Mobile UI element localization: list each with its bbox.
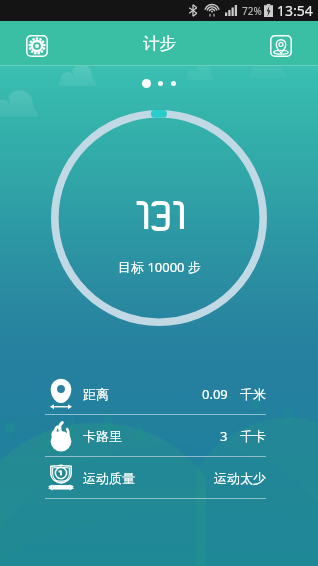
staticText: 0.09 (202, 385, 228, 403)
button[interactable]: Location profile (270, 35, 292, 57)
staticText: 计步 (143, 33, 176, 54)
staticText: 千卡 (240, 428, 266, 444)
staticText: 3 (220, 427, 228, 445)
button[interactable]: 卡路里 (45, 415, 266, 456)
button[interactable]: 距离 (45, 373, 266, 414)
staticText: 千米 (240, 386, 266, 402)
staticText: 72% (242, 4, 262, 18)
button[interactable]: Settings (26, 35, 48, 57)
staticText: 运动质量 (83, 470, 135, 486)
button[interactable]: 运动质量 (45, 457, 266, 498)
staticText: 距离 (83, 386, 109, 402)
staticText: 13:54 (277, 1, 313, 20)
staticText: 运动太少 (214, 470, 266, 486)
staticText: 卡路里 (83, 428, 122, 444)
staticText: 目标 10000 步 (118, 258, 201, 276)
